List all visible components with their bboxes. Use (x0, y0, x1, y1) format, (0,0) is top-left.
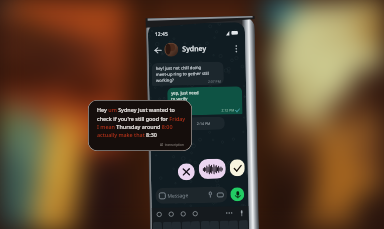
staticText: Message (167, 192, 188, 200)
staticText: yep, just need to verify (171, 90, 199, 103)
staticText: Hey um Sydney just wanted to check if yo… (97, 106, 186, 138)
button[interactable]: Send (230, 159, 245, 176)
button[interactable]: Cancel (178, 163, 195, 181)
staticText: AI transcription (160, 143, 184, 147)
button[interactable]: Message (155, 186, 227, 204)
button[interactable]: Hey um Sydney just wanted to check if yo… (88, 100, 192, 151)
staticText: 12:45 (155, 31, 168, 38)
button[interactable]: Back (151, 44, 164, 57)
staticText: Sydney (182, 44, 206, 54)
staticText: hey! just not chill doing meet-up ring t… (156, 65, 209, 84)
staticText: 2:14 PM (197, 121, 211, 126)
button[interactable]: More options (230, 43, 241, 54)
button[interactable]: Play voice message (199, 158, 226, 179)
staticText: 2:07 PM (208, 79, 221, 84)
staticText: 2:12 PM (221, 107, 235, 113)
button[interactable]: Record voice message (230, 187, 244, 201)
